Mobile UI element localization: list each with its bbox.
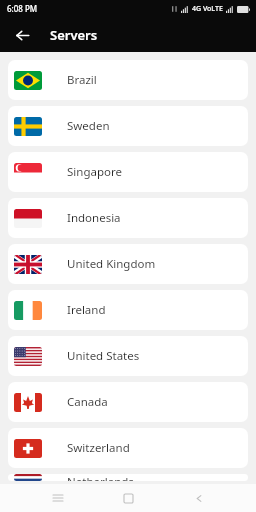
button[interactable]: United Kingdom	[8, 244, 248, 284]
button[interactable]: United States	[8, 336, 248, 376]
button[interactable]: Back	[186, 485, 212, 511]
staticText: Ireland	[67, 302, 106, 318]
button[interactable]: Ireland	[8, 290, 248, 330]
staticText: United Kingdom	[67, 256, 156, 272]
button[interactable]: Brazil	[8, 60, 248, 100]
staticText: United States	[67, 348, 140, 364]
staticText: Servers	[50, 26, 98, 44]
staticText: Indonesia	[67, 210, 121, 226]
staticText: Brazil	[67, 72, 97, 88]
button[interactable]: Back	[8, 21, 36, 49]
staticText: Singapore	[67, 164, 122, 180]
staticText: 6:08 PM	[7, 3, 38, 14]
button[interactable]: Singapore	[8, 152, 248, 192]
staticText: Netherlands	[67, 474, 134, 481]
staticText: 4G VoLTE	[192, 4, 223, 14]
button[interactable]: Switzerland	[8, 428, 248, 468]
button[interactable]: Netherlands	[8, 474, 248, 481]
button[interactable]: Canada	[8, 382, 248, 422]
button[interactable]: Recent apps	[45, 485, 71, 511]
button[interactable]: Home	[115, 485, 141, 511]
button[interactable]: Indonesia	[8, 198, 248, 238]
staticText: Canada	[67, 394, 108, 410]
staticText: Switzerland	[67, 440, 130, 456]
staticText: Sweden	[67, 118, 110, 134]
button[interactable]: Sweden	[8, 106, 248, 146]
